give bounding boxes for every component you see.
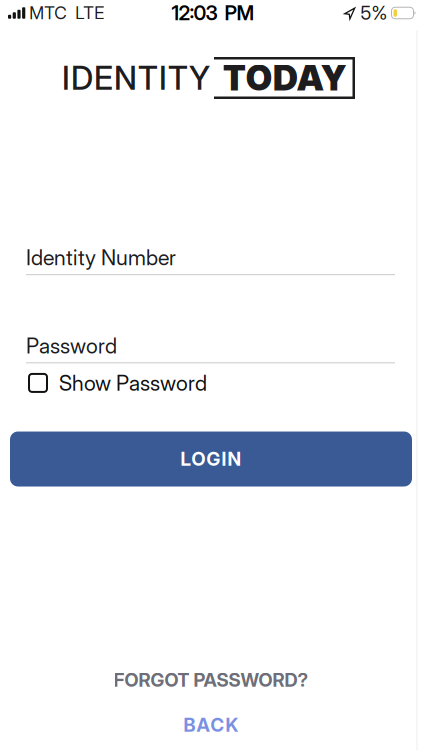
button[interactable]: Identity Number (0, 245, 422, 275)
staticText: LTE (75, 3, 104, 23)
button[interactable]: Show Password (0, 370, 422, 395)
staticText: 5% (360, 2, 387, 24)
staticText: Show Password (59, 370, 207, 395)
button[interactable]: Password (0, 333, 422, 363)
button[interactable]: BACK (183, 691, 238, 750)
staticText: TODAY (223, 58, 346, 98)
staticText: FORGOT PASSWORD? (113, 669, 308, 691)
button[interactable]: FORGOT PASSWORD? (113, 669, 308, 691)
staticText: LOGIN (180, 448, 241, 470)
staticText: 12:03 PM (171, 1, 254, 25)
staticText: BACK (183, 714, 238, 736)
staticText: Password (26, 333, 117, 358)
staticText: MTC (29, 3, 67, 23)
button[interactable]: LOGIN (10, 431, 412, 486)
staticText: IDENTITY (62, 59, 210, 97)
staticText: Identity Number (26, 245, 176, 270)
